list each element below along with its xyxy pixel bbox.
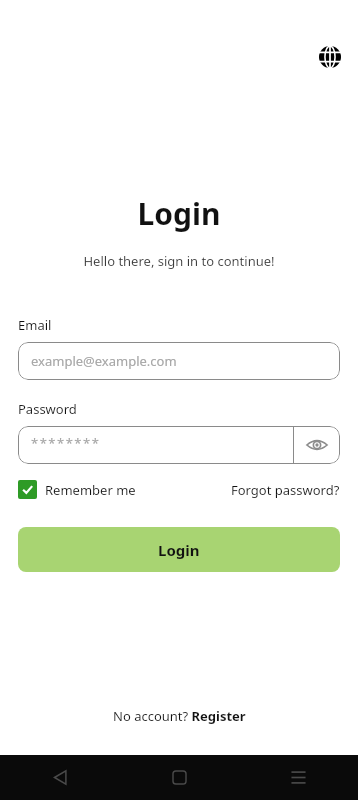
- button[interactable]: Show password: [294, 426, 340, 464]
- staticText: ********: [31, 434, 101, 452]
- staticText: example@example.com: [31, 352, 177, 370]
- staticText: Password: [18, 400, 77, 418]
- button[interactable]: No account? Register: [105, 703, 254, 729]
- button[interactable]: Change language: [315, 42, 345, 72]
- button[interactable]: Home: [120, 755, 239, 800]
- staticText: No account? Register: [113, 707, 246, 725]
- staticText: Hello there, sign in to continue!: [0, 252, 358, 270]
- staticText: Remember me: [45, 481, 136, 499]
- button[interactable]: ********: [18, 434, 293, 456]
- button[interactable]: Back: [0, 755, 120, 800]
- button[interactable]: Recent apps: [239, 755, 358, 800]
- button[interactable]: Forgot password?: [231, 481, 340, 499]
- staticText: Login: [0, 193, 358, 234]
- staticText: Forgot password?: [231, 481, 340, 499]
- staticText: Login: [158, 540, 200, 560]
- button[interactable]: example@example.com: [18, 342, 340, 380]
- button[interactable]: Login: [18, 527, 340, 572]
- staticText: Email: [18, 316, 52, 334]
- button[interactable]: Remember me: [18, 480, 136, 499]
